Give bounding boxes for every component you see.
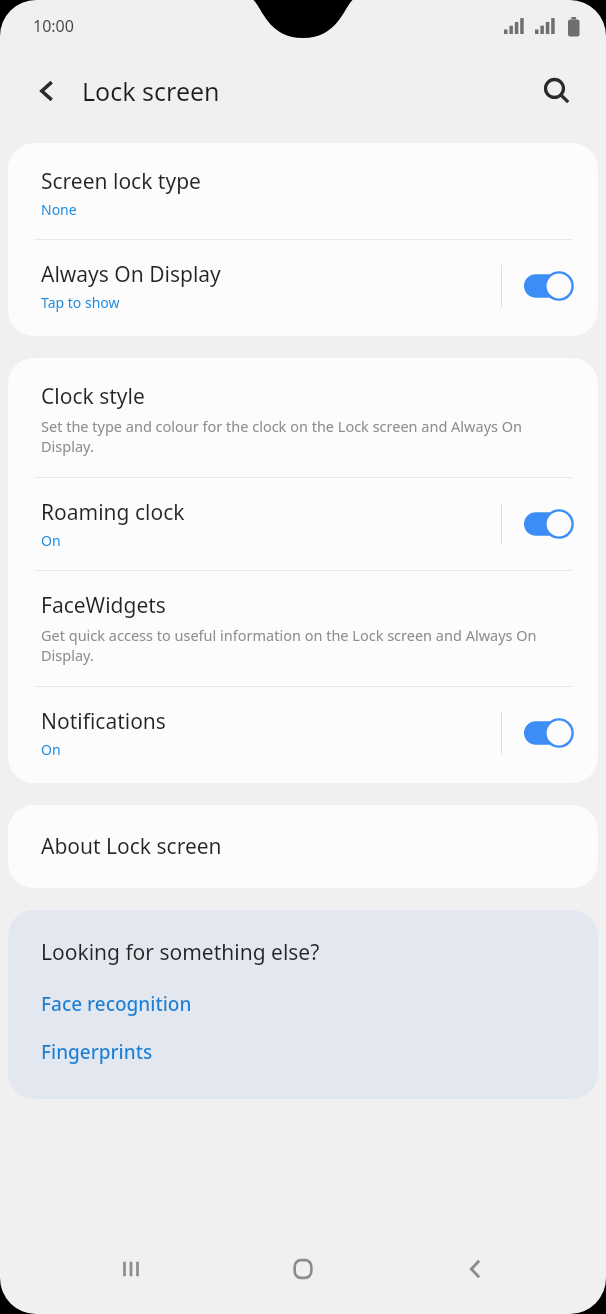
button[interactable]: Notifications (8, 687, 598, 783)
staticText: FaceWidgets (41, 591, 166, 620)
button[interactable]: FaceWidgets (8, 571, 598, 686)
button[interactable]: Always On Display (8, 240, 598, 336)
staticText: On (41, 740, 61, 759)
staticText: Tap to show (41, 293, 120, 312)
button[interactable]: Home (261, 1227, 345, 1311)
button[interactable]: Always On Display toggle (522, 269, 576, 303)
staticText: Always On Display (41, 260, 221, 289)
staticText: Get quick access to useful information o… (41, 625, 576, 666)
staticText: None (41, 200, 77, 219)
button[interactable]: Back (18, 62, 76, 120)
staticText: Fingerprints (41, 1039, 153, 1065)
staticText: On (41, 531, 61, 550)
button[interactable]: Fingerprints (41, 1039, 153, 1065)
button[interactable]: Roaming clock toggle (522, 507, 576, 541)
staticText: Looking for something else? (41, 938, 320, 967)
button[interactable]: Search (528, 62, 586, 120)
staticText: Face recognition (41, 991, 192, 1017)
staticText: Lock screen (82, 74, 220, 108)
button[interactable]: Notifications toggle (522, 716, 576, 750)
staticText: Roaming clock (41, 498, 185, 527)
staticText: Set the type and colour for the clock on… (41, 416, 576, 457)
button[interactable]: Roaming clock (8, 478, 598, 570)
staticText: 10:00 (33, 15, 74, 37)
staticText: About Lock screen (41, 832, 222, 861)
staticText: Clock style (41, 382, 145, 411)
button[interactable]: Recents (89, 1227, 173, 1311)
staticText: Notifications (41, 707, 166, 736)
staticText: Screen lock type (41, 167, 201, 196)
button[interactable]: Face recognition (41, 991, 192, 1017)
button[interactable]: About Lock screen (8, 805, 598, 888)
button[interactable]: Screen lock type (8, 143, 598, 239)
button[interactable]: Back (434, 1227, 518, 1311)
button[interactable]: Clock style (8, 358, 598, 477)
